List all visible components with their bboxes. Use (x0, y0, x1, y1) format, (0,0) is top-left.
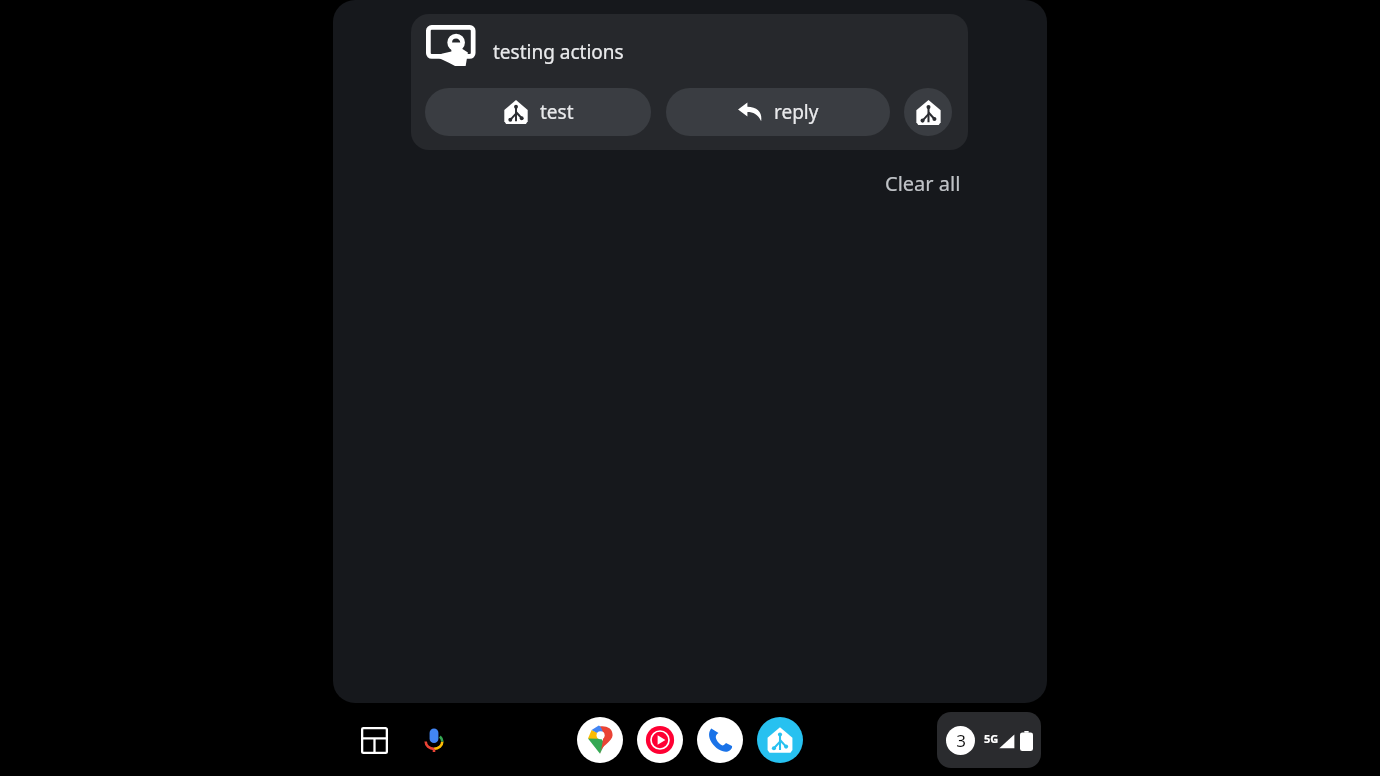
button[interactable]: Google Home (757, 717, 803, 763)
staticText: reply (774, 99, 819, 125)
button[interactable]: Open in Google Home (904, 88, 952, 136)
button[interactable]: Dashboard (352, 718, 396, 762)
staticText: Clear all (885, 170, 961, 197)
staticText: 3 (956, 729, 966, 752)
staticText: 5G (984, 731, 999, 746)
button[interactable]: reply (666, 88, 890, 136)
staticText: test (540, 99, 574, 125)
button[interactable]: testing actions (411, 14, 968, 150)
button[interactable]: YouTube Music (637, 717, 683, 763)
button[interactable]: Status: notifications, 5G, battery (937, 712, 1041, 768)
button[interactable]: Clear all (877, 166, 969, 201)
button[interactable]: Google Maps (577, 717, 623, 763)
staticText: testing actions (493, 39, 624, 65)
button[interactable]: test (425, 88, 651, 136)
button[interactable]: Google Assistant (412, 718, 456, 762)
button[interactable]: Phone (697, 717, 743, 763)
